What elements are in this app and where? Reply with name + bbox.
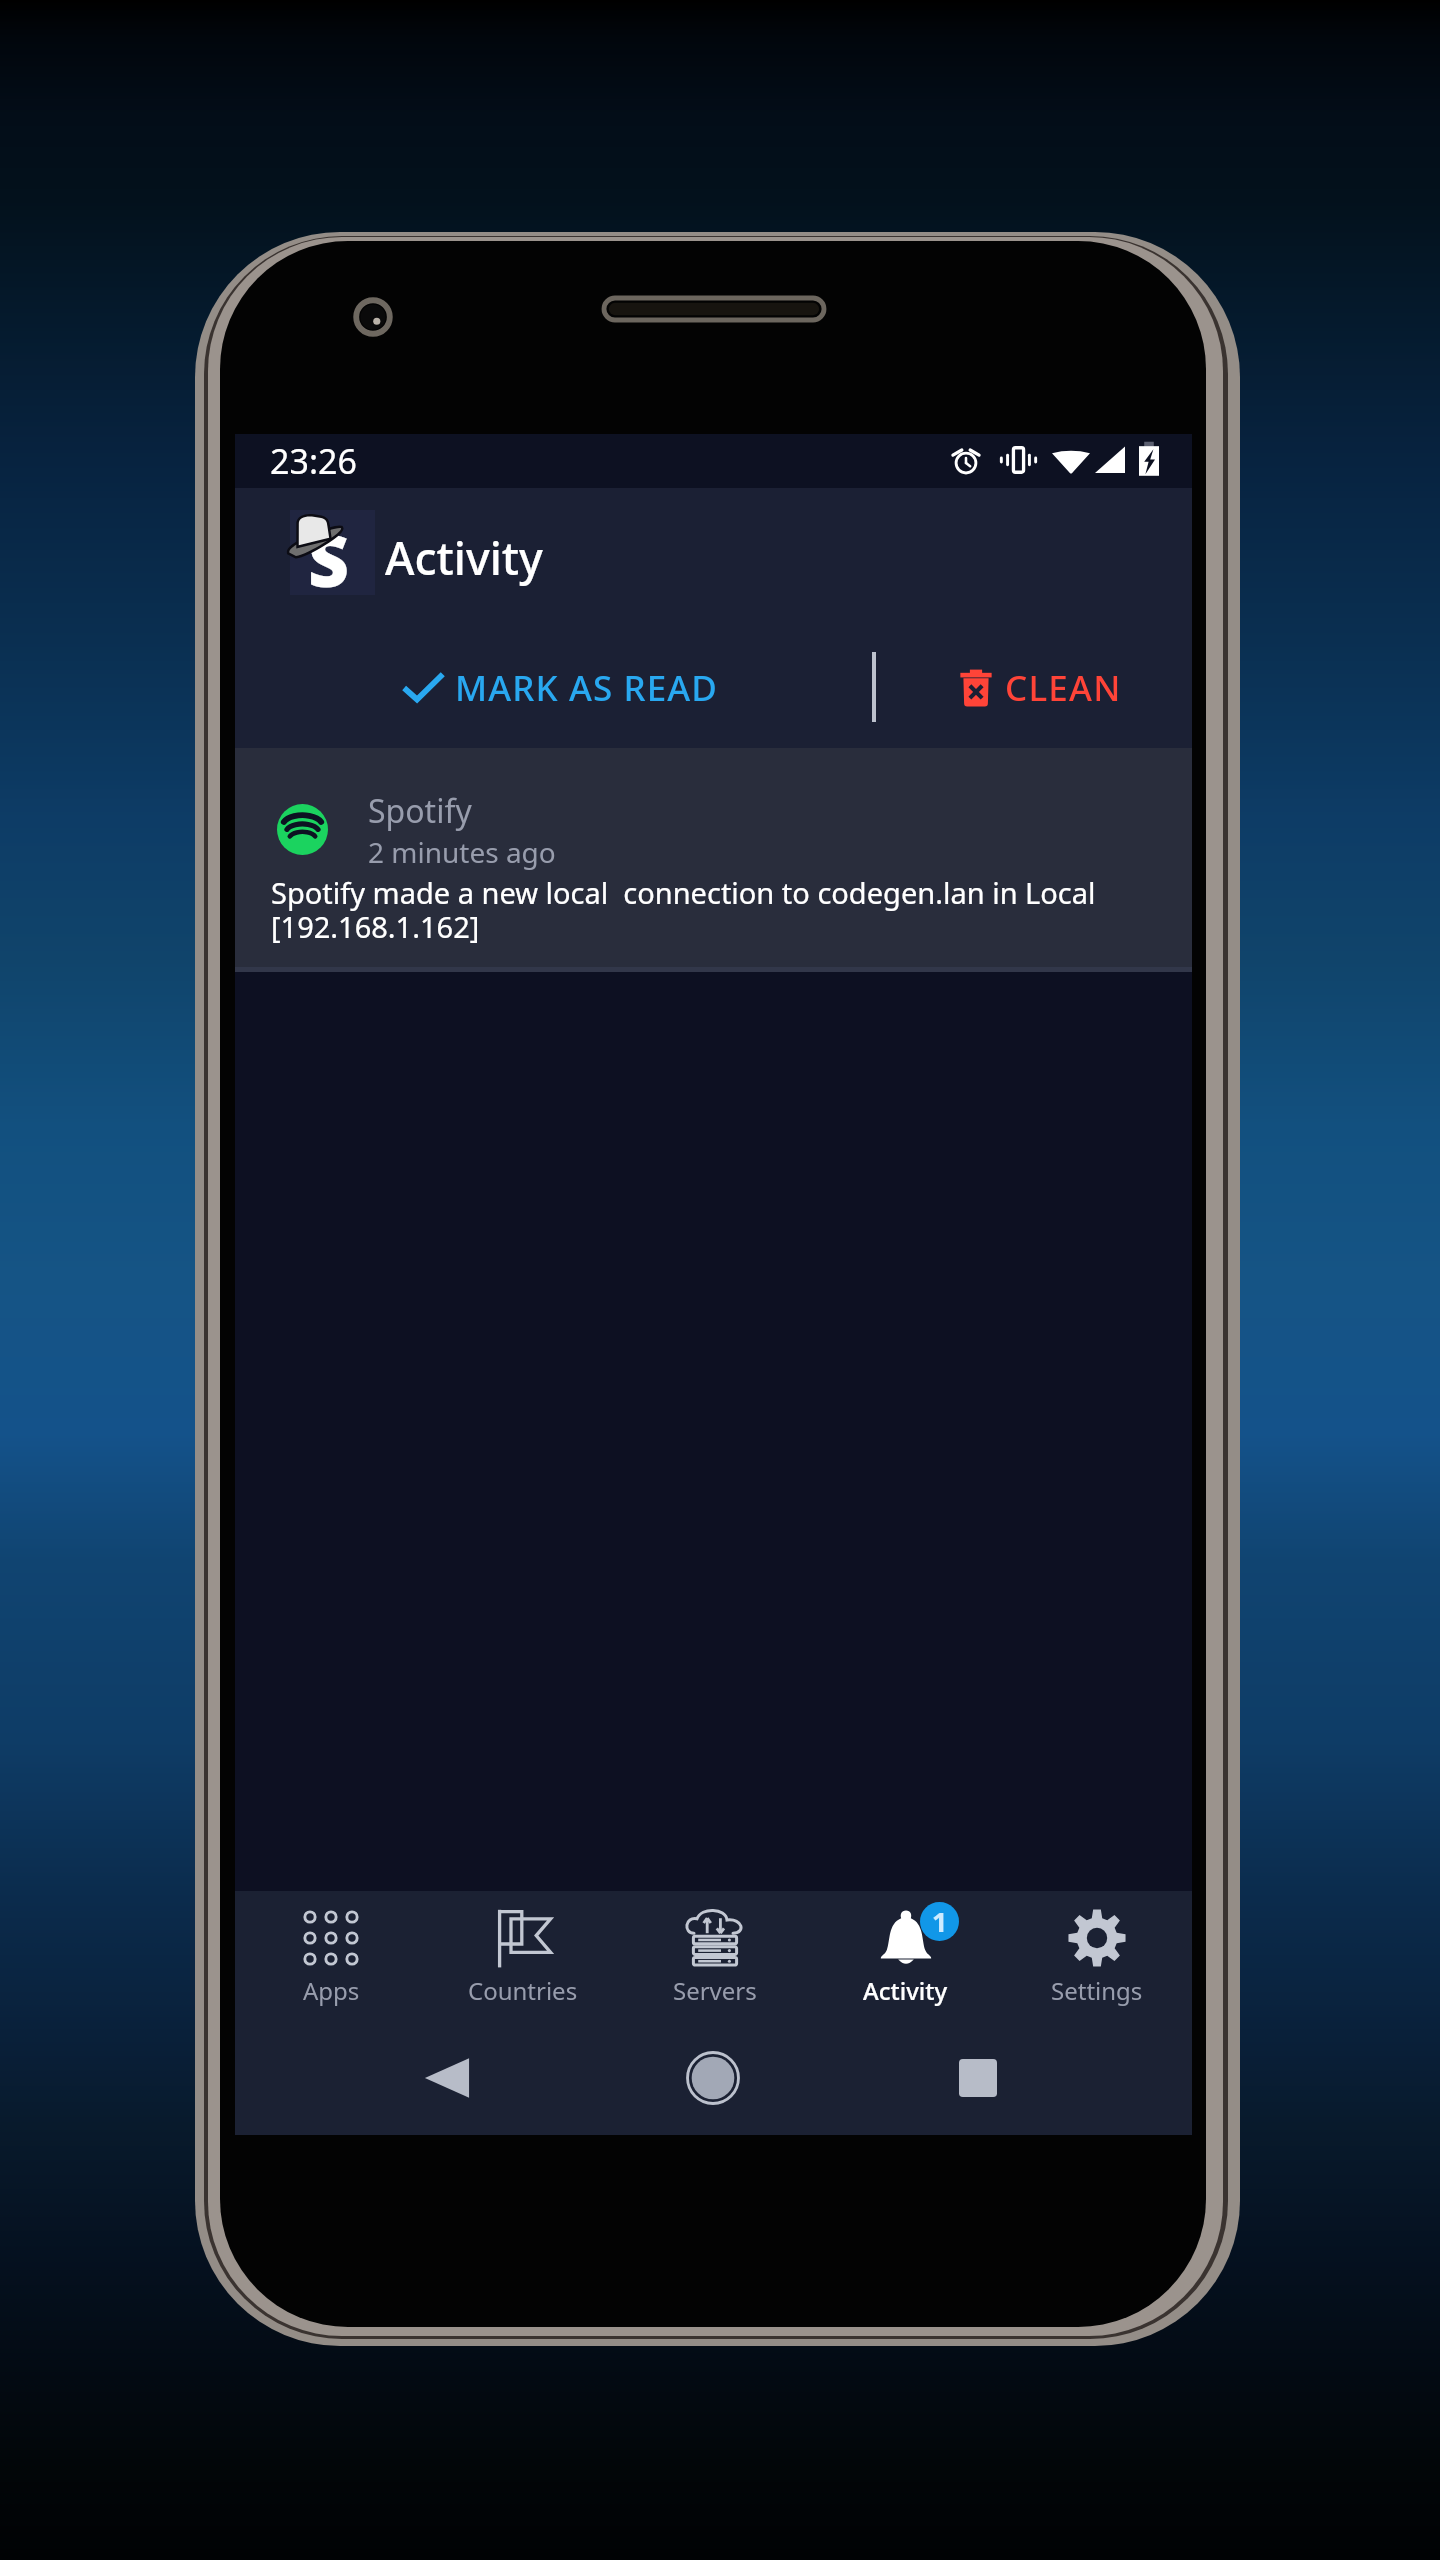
- button[interactable]: Back: [412, 2043, 482, 2113]
- staticText: Spotify made a new local connection to c…: [271, 873, 1096, 946]
- staticText: S: [308, 511, 349, 608]
- button[interactable]: Home: [678, 2043, 748, 2113]
- staticText: 1: [932, 1903, 948, 1940]
- staticText: Activity: [385, 527, 543, 588]
- staticText: Spotify: [368, 789, 472, 833]
- staticText: Apps: [303, 1974, 360, 2007]
- button[interactable]: Apps: [235, 1891, 427, 2021]
- staticText: Countries: [468, 1974, 578, 2007]
- staticText: MARK AS READ: [455, 664, 718, 712]
- button[interactable]: Servers: [619, 1891, 810, 2021]
- staticText: CLEAN: [1005, 664, 1122, 712]
- button[interactable]: Spotify: [235, 748, 1192, 972]
- button[interactable]: Settings: [1001, 1891, 1192, 2021]
- button[interactable]: 1: [810, 1891, 1001, 2021]
- staticText: Settings: [1051, 1974, 1143, 2007]
- button[interactable]: Recent apps: [943, 2043, 1013, 2113]
- button[interactable]: Countries: [427, 1891, 619, 2021]
- button[interactable]: CLEAN: [957, 663, 1122, 713]
- staticText: 23:26: [270, 438, 357, 484]
- staticText: Servers: [673, 1974, 757, 2007]
- button[interactable]: MARK AS READ: [400, 663, 718, 713]
- staticText: 2 minutes ago: [368, 833, 556, 871]
- staticText: Activity: [863, 1974, 948, 2007]
